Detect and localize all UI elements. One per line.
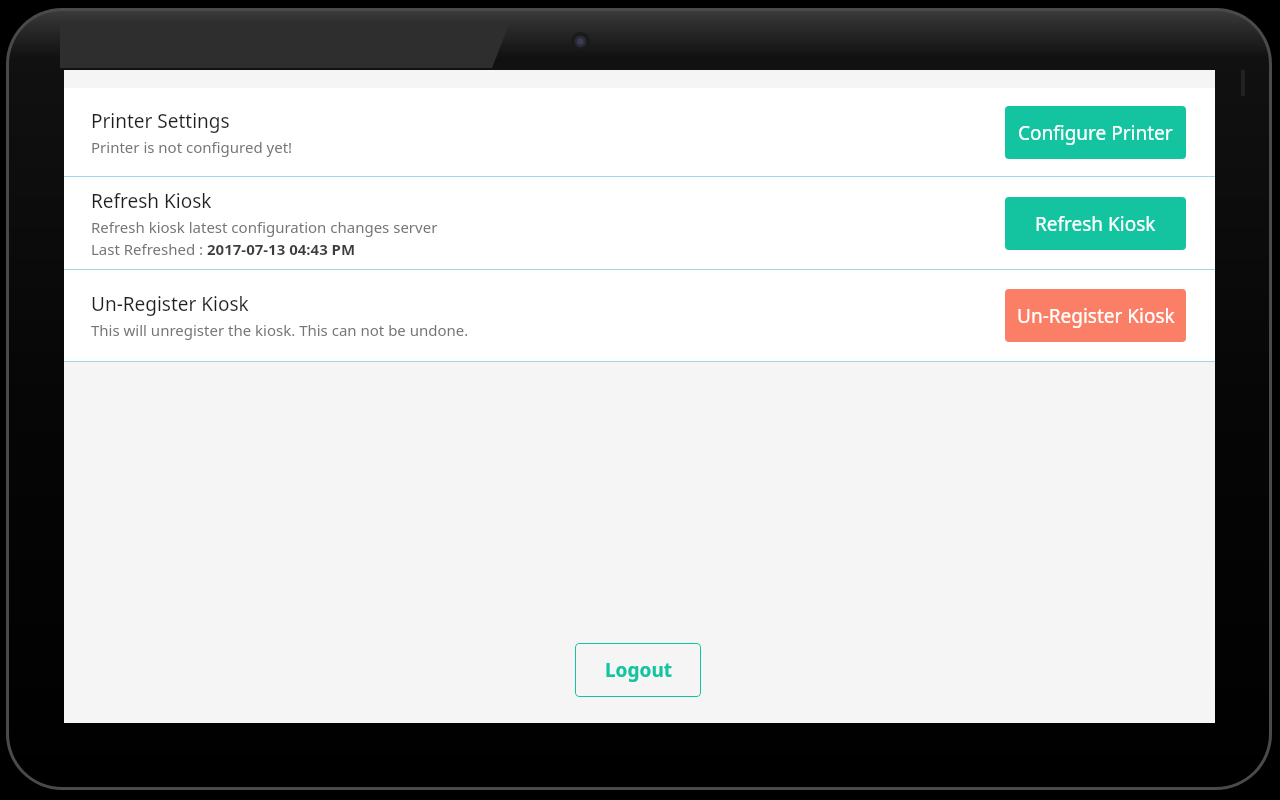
button[interactable]: Refresh Kiosk xyxy=(1005,197,1186,250)
button[interactable]: Refresh Kiosk xyxy=(64,177,1215,269)
button[interactable]: Printer Settings xyxy=(64,88,1215,176)
button[interactable]: Un-Register Kiosk xyxy=(64,270,1215,361)
button[interactable]: Logout xyxy=(575,643,701,697)
staticText: Printer Settings xyxy=(91,108,230,134)
button[interactable]: Un-Register Kiosk xyxy=(1005,289,1186,342)
staticText: Refresh Kiosk xyxy=(91,188,212,214)
staticText: Un-Register Kiosk xyxy=(1017,303,1175,329)
staticText: Configure Printer xyxy=(1018,120,1173,146)
staticText: Printer is not configured yet! xyxy=(91,137,293,157)
staticText: Un-Register Kiosk xyxy=(91,291,249,317)
staticText: Refresh kiosk latest configuration chang… xyxy=(91,217,438,237)
staticText: This will unregister the kiosk. This can… xyxy=(91,320,469,340)
staticText: Refresh Kiosk xyxy=(1035,211,1156,237)
button[interactable]: Configure Printer xyxy=(1005,106,1186,159)
staticText: Logout xyxy=(605,657,672,683)
staticText: Last Refreshed : 2017-07-13 04:43 PM xyxy=(91,239,356,259)
